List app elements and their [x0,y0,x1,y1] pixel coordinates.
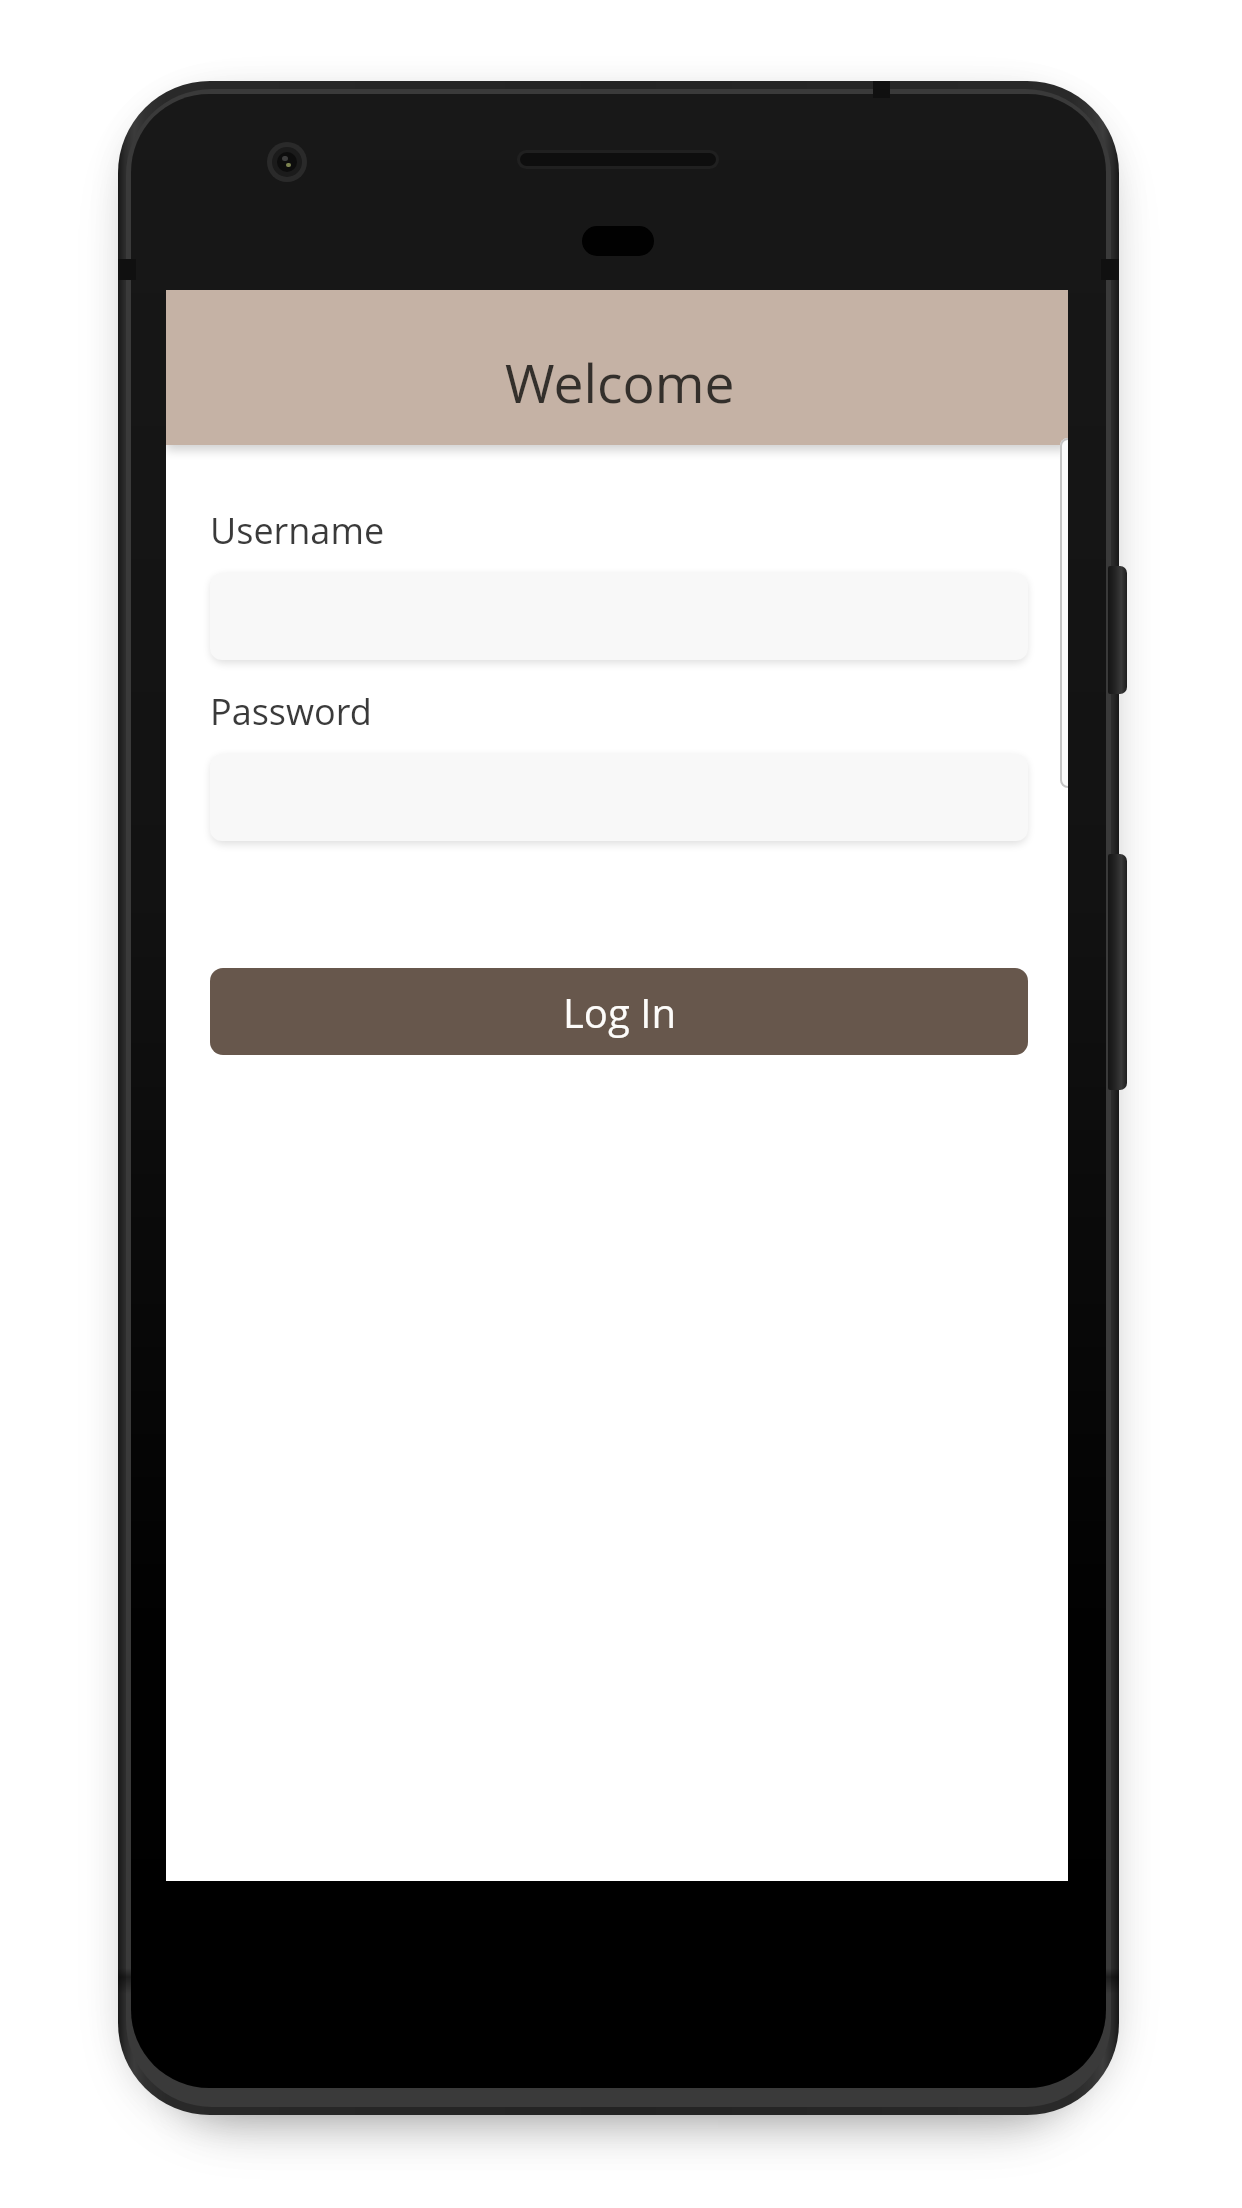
staticText: Password [210,687,372,736]
staticText: Log In [563,985,676,1039]
staticText: Welcome [505,346,735,419]
button[interactable]: Log In [210,968,1028,1055]
staticText: Username [210,506,385,555]
